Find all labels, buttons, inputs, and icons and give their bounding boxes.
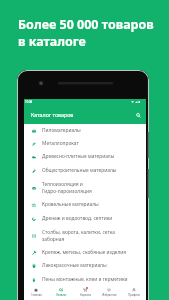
button[interactable]: Search (132, 109, 145, 122)
button[interactable]: Общестроительные материалы (24, 164, 146, 177)
button[interactable]: Каталог (49, 286, 73, 300)
button[interactable]: Дренаж и водоотвод, септики (24, 212, 146, 225)
button[interactable]: Профиль (122, 286, 146, 300)
staticText: Теплоизоляция и Гидро-пароизоляция (42, 181, 92, 195)
staticText: Кровельные материалы (42, 201, 99, 208)
staticText: Древесно-плитные материалы (42, 153, 115, 160)
button[interactable]: Лакокрасочные материалы (24, 259, 146, 272)
button[interactable]: Теплоизоляция и Гидро-пароизоляция (24, 177, 146, 198)
button[interactable]: Пиломатериалы (24, 124, 146, 137)
staticText: Более 50 000 товаров в каталоге (18, 16, 154, 50)
button[interactable]: Избранное (97, 286, 121, 300)
staticText: Крепеж, метизы, скобяные изделия (42, 249, 127, 256)
staticText: Металлопрокат (42, 140, 79, 147)
staticText: Профиль (128, 293, 140, 297)
staticText: Дренаж и водоотвод, септики (42, 215, 113, 222)
staticText: Главная (31, 293, 42, 297)
staticText: Лакокрасочные материалы (42, 262, 107, 269)
button[interactable]: Пены монтажные, клеи и герметики (24, 273, 146, 286)
staticText: Пиломатериалы (42, 127, 81, 134)
button[interactable]: Корзина (73, 286, 97, 300)
staticText: Пены монтажные, клеи и герметики (42, 276, 128, 283)
button[interactable]: Столбы, ворота, калитки, сетка заборная (24, 225, 146, 246)
staticText: Каталог (56, 293, 67, 297)
button[interactable]: Крепеж, метизы, скобяные изделия (24, 246, 146, 259)
button[interactable]: Металлопрокат (24, 137, 146, 150)
button[interactable]: Древесно-плитные материалы (24, 150, 146, 163)
staticText: 10:07 (25, 100, 32, 104)
staticText: Каталог товаров (31, 111, 74, 118)
button[interactable]: Главная (24, 286, 48, 300)
staticText: Общестроительные материалы (42, 167, 117, 174)
staticText: Столбы, ворота, калитки, сетка заборная (42, 229, 115, 243)
staticText: Избранное (102, 293, 117, 297)
staticText: Корзина (80, 293, 91, 297)
button[interactable]: Кровельные материалы (24, 198, 146, 211)
